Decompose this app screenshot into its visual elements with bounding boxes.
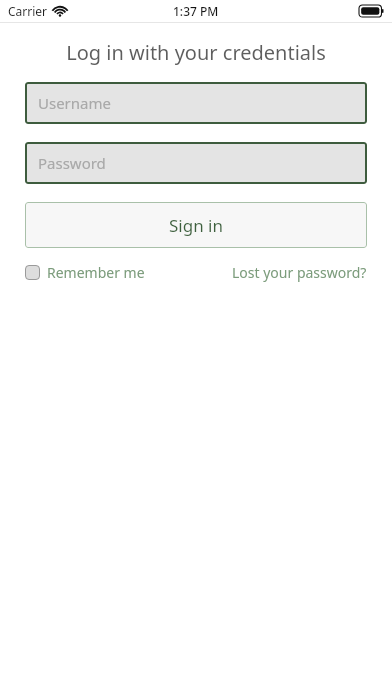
staticText: Carrier — [8, 3, 48, 19]
button[interactable]: Lost your password? — [232, 263, 367, 282]
button[interactable]: Sign in — [25, 202, 367, 248]
staticText: 1:37 PM — [173, 3, 219, 19]
staticText: Lost your password? — [232, 263, 367, 282]
staticText: Sign in — [169, 214, 223, 237]
button[interactable]: Remember me — [25, 263, 145, 282]
staticText: Remember me — [47, 263, 145, 282]
staticText: Log in with your credentials — [0, 39, 392, 66]
staticText: Username — [38, 93, 111, 113]
staticText: Password — [38, 153, 106, 173]
button[interactable]: Username — [25, 82, 367, 124]
button[interactable]: Password — [25, 142, 367, 184]
